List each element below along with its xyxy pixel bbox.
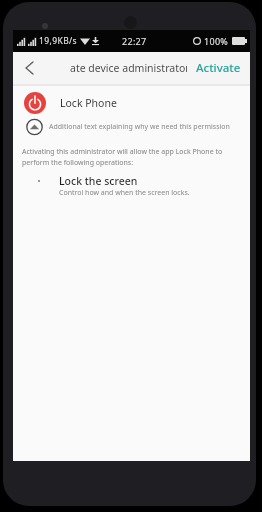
staticText: Additional text explaining why we need t… (49, 122, 230, 132)
staticText: 100% (204, 35, 229, 47)
staticText: Activate (196, 60, 241, 76)
staticText: Lock Phone (60, 96, 117, 110)
staticText: Activating this administrator will allow… (22, 147, 223, 167)
staticText: Control how and when the screen locks. (59, 188, 190, 198)
staticText: ate device administrator (70, 61, 187, 75)
staticText: 19,9KB/s (39, 35, 78, 47)
staticText: Lock the screen (59, 174, 138, 188)
button[interactable]: Additional text explaining why we need t… (26, 120, 250, 134)
button[interactable]: Activate (187, 52, 250, 84)
button[interactable]: Lock Phone (24, 86, 250, 120)
button[interactable] (13, 52, 45, 84)
staticText: 22:27 (122, 35, 147, 47)
